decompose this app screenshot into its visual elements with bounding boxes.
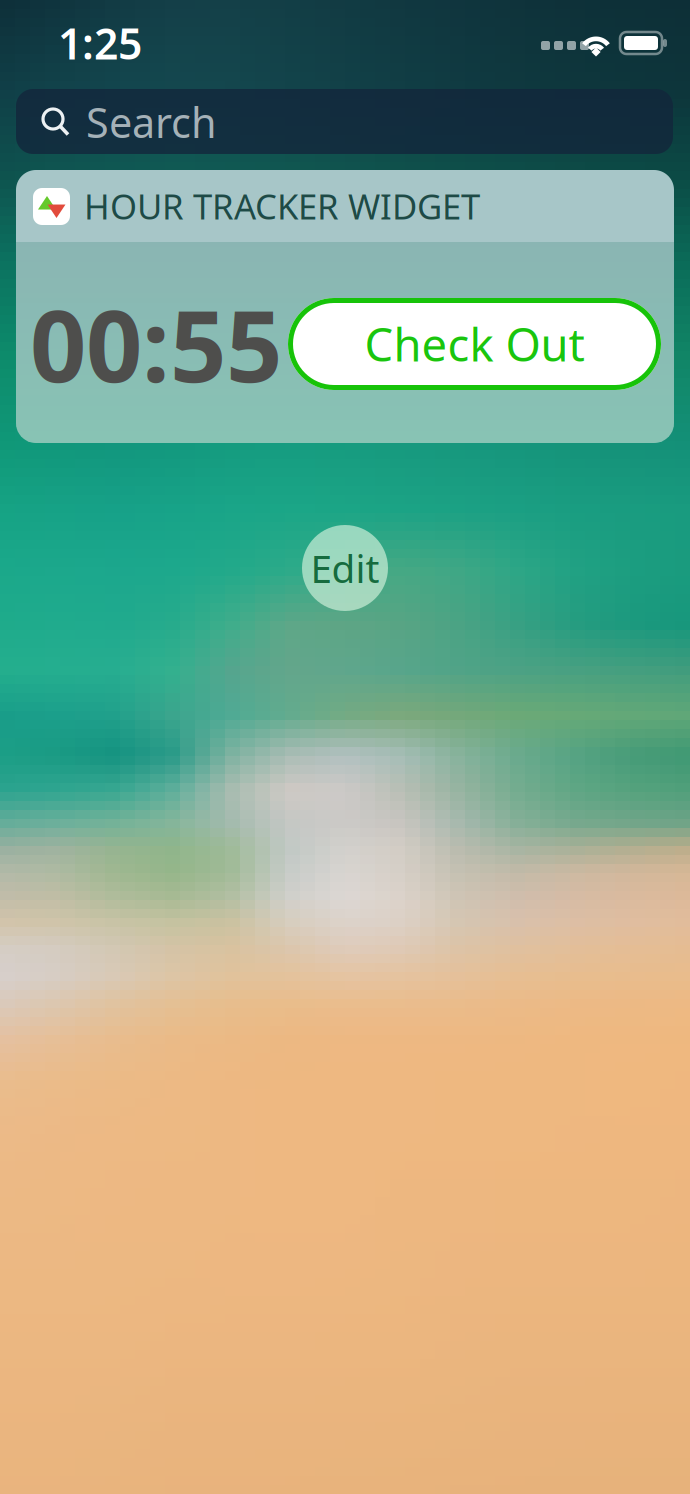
button[interactable]: Check Out [288,298,661,390]
staticText: 1:25 [58,15,142,71]
button[interactable]: Search [16,89,673,154]
staticText: Check Out [364,314,584,374]
staticText: Search [86,95,217,149]
staticText: HOUR TRACKER WIDGET [84,183,480,229]
button[interactable]: Edit [302,525,388,611]
staticText: 00:55 [30,278,282,409]
staticText: Edit [310,542,379,594]
button[interactable]: HOUR TRACKER WIDGET [16,170,674,443]
